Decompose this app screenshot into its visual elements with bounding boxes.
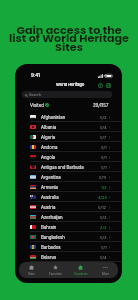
staticText: 0/1 xyxy=(101,165,107,170)
button[interactable]: Barbados xyxy=(30,242,111,252)
staticText: Albania xyxy=(41,125,57,130)
staticText: 0/1 xyxy=(101,245,107,250)
button[interactable]: Azerbaijan xyxy=(30,212,111,222)
staticText: 0/4 xyxy=(100,125,107,130)
button[interactable]: Argentina xyxy=(30,172,111,182)
staticText: World Heritage xyxy=(56,82,85,87)
button[interactable]: Austria xyxy=(30,202,111,212)
staticText: Austria xyxy=(41,205,56,210)
staticText: 0/7 xyxy=(100,135,107,140)
staticText: 0/3 xyxy=(100,215,107,220)
staticText: Search xyxy=(29,93,41,97)
staticText: 0/1 xyxy=(101,145,107,150)
staticText: Australia xyxy=(41,195,59,200)
staticText: 0/11 xyxy=(99,175,107,180)
staticText: More xyxy=(102,272,110,276)
button[interactable]: Antigua and Barbuda xyxy=(30,162,111,172)
staticText: Barbados xyxy=(41,245,61,250)
button[interactable]: Australia xyxy=(30,192,111,202)
staticText: 0/2 xyxy=(100,115,107,120)
staticText: Countries xyxy=(74,272,88,276)
button[interactable]: Algeria xyxy=(30,132,111,142)
button[interactable]: Sites xyxy=(19,262,43,278)
button[interactable]: Filter xyxy=(98,83,103,88)
button[interactable]: Albania xyxy=(30,122,111,132)
staticText: Visited xyxy=(30,103,44,108)
button[interactable]: Countries xyxy=(68,262,93,278)
staticText: Afghanistan xyxy=(41,115,66,120)
staticText: Favorites xyxy=(49,272,62,276)
staticText: 29/1157 xyxy=(93,103,109,108)
button[interactable]: Belarus xyxy=(30,252,111,262)
button[interactable]: Map xyxy=(106,83,111,88)
staticText: Argentina xyxy=(41,175,61,180)
staticText: 2/3 xyxy=(100,225,107,230)
staticText: Azerbaijan xyxy=(41,215,63,220)
staticText: Algeria xyxy=(41,135,56,140)
staticText: Bahrain xyxy=(41,225,57,230)
staticText: 0/4 xyxy=(100,255,107,260)
button[interactable]: Favorites xyxy=(43,262,68,278)
button[interactable]: Bahrain xyxy=(30,222,111,232)
button[interactable]: Bangladesh xyxy=(30,232,111,242)
button[interactable]: Search xyxy=(22,91,112,98)
staticText: 0/3 xyxy=(100,235,107,240)
staticText: Bangladesh xyxy=(41,235,65,240)
staticText: Angola xyxy=(41,155,56,160)
button[interactable]: Armenia xyxy=(30,182,111,192)
staticText: 0/1 xyxy=(101,155,107,160)
staticText: Antigua and Barbuda xyxy=(41,165,84,170)
staticText: Andorra xyxy=(41,145,58,150)
button[interactable]: Afghanistan xyxy=(30,112,111,122)
staticText: Gain access to the list of World Heritag… xyxy=(0,22,138,55)
button[interactable]: More xyxy=(93,262,118,278)
staticText: 9:41 xyxy=(31,73,40,78)
staticText: 4/20 xyxy=(98,195,107,200)
staticText: 0/12 xyxy=(98,205,107,210)
staticText: Sites xyxy=(28,272,35,276)
button[interactable]: Angola xyxy=(30,152,111,162)
staticText: Belarus xyxy=(41,255,57,260)
button[interactable]: Andorra xyxy=(30,142,111,152)
staticText: Armenia xyxy=(41,185,58,190)
staticText: 1/3 xyxy=(101,185,107,190)
